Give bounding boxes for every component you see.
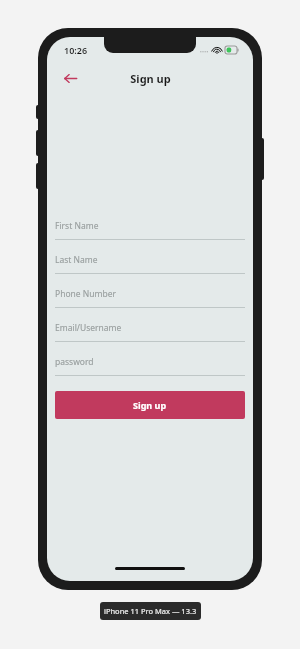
staticText: Email/Username (55, 322, 122, 334)
staticText: password (55, 356, 94, 368)
staticText: Sign up (130, 71, 171, 86)
button[interactable]: Phone Number (55, 281, 245, 315)
button[interactable]: Last Name (55, 247, 245, 281)
staticText: Sign up (133, 399, 167, 411)
staticText: 10:26 (64, 44, 88, 56)
staticText: iPhone 11 Pro Max — 13.3 (104, 606, 197, 616)
staticText: Last Name (55, 254, 98, 266)
button[interactable]: Sign up (55, 391, 245, 419)
staticText: First Name (55, 220, 99, 232)
button[interactable]: password (55, 349, 245, 383)
staticText: Phone Number (55, 288, 116, 300)
button[interactable]: First Name (55, 213, 245, 247)
button[interactable]: Back (55, 63, 85, 93)
button[interactable]: Email/Username (55, 315, 245, 349)
